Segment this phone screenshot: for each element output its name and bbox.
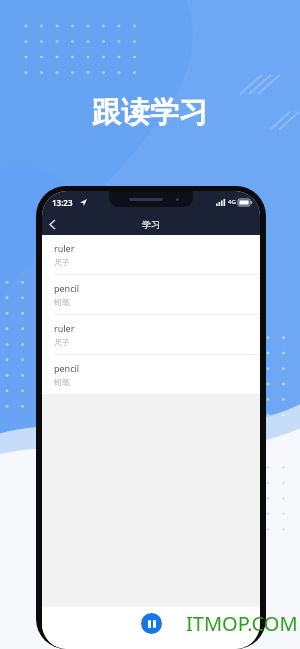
button[interactable]: ruler	[42, 235, 260, 274]
staticText: ruler	[54, 242, 75, 254]
button[interactable]: Pause	[141, 613, 162, 634]
staticText: ITMOP.COM	[186, 610, 298, 637]
staticText: 尺子	[54, 337, 70, 347]
staticText: 铅笔	[54, 377, 70, 387]
button[interactable]: ruler	[42, 315, 260, 354]
staticText: 尺子	[54, 257, 70, 267]
button[interactable]: Back	[42, 214, 62, 234]
staticText: 13:23	[52, 197, 73, 208]
staticText: 学习	[142, 219, 160, 230]
staticText: pencil	[54, 282, 80, 294]
staticText: 跟读学习	[92, 94, 208, 131]
staticText: pencil	[54, 362, 80, 374]
button[interactable]: pencil	[42, 355, 260, 394]
staticText: 4G	[228, 198, 236, 206]
staticText: 铅笔	[54, 297, 70, 307]
other: Toolbar	[42, 213, 260, 235]
button[interactable]: pencil	[42, 275, 260, 314]
staticText: ruler	[54, 322, 75, 334]
